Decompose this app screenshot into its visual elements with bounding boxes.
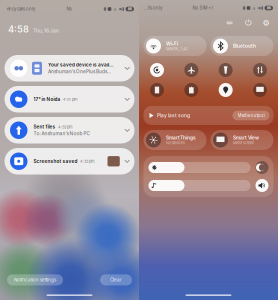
staticText: No devices xyxy=(166,141,185,145)
button[interactable]: Quick setting xyxy=(150,63,164,77)
staticText: 4:33 pm xyxy=(80,159,95,164)
staticText: …lls only xyxy=(144,5,162,11)
staticText: Media output xyxy=(237,113,264,118)
button[interactable]: Smart View xyxy=(210,130,273,150)
staticText: 86 xyxy=(128,7,132,11)
staticText: Anshuman's OnePlus Buds… xyxy=(48,69,111,74)
button[interactable]: Quick setting xyxy=(253,83,267,97)
button[interactable]: Quick setting xyxy=(253,63,267,77)
button[interactable]: Quick setting xyxy=(150,83,164,97)
staticText: ⏻ xyxy=(245,19,251,27)
staticText: Bluetooth xyxy=(233,43,256,49)
staticText: To: Anshuman's Noob PC xyxy=(33,131,89,136)
button[interactable]: Your saved device is avail… xyxy=(4,55,134,81)
button[interactable]: Settings xyxy=(261,17,271,28)
button[interactable]: Quick setting xyxy=(184,83,198,97)
button[interactable]: Toggle xyxy=(255,161,268,174)
staticText: No SIM • I xyxy=(192,5,212,11)
button[interactable]: Notification settings xyxy=(7,274,63,285)
staticText: 86 xyxy=(267,6,271,10)
button[interactable]: Power xyxy=(243,17,253,28)
staticText: SmartThings xyxy=(166,135,196,141)
staticText: Thu, 16 Jan xyxy=(33,28,59,34)
staticText: 4:58 xyxy=(8,23,29,35)
button[interactable]: Bluetooth xyxy=(210,36,273,56)
button[interactable]: 17° in Noida xyxy=(4,86,134,112)
button[interactable]: Quick setting xyxy=(184,63,198,77)
staticText: ⚙ xyxy=(262,18,269,28)
staticText: Realme_7_4G xyxy=(166,47,188,51)
staticText: Screenshot saved xyxy=(33,158,77,164)
staticText: Play last song xyxy=(157,113,190,118)
button[interactable]: SmartThings xyxy=(143,130,206,150)
button[interactable]: Wi-Fi xyxy=(143,36,206,56)
button[interactable]: Quick setting xyxy=(219,63,233,77)
staticText: Smart View xyxy=(233,135,259,141)
staticText: Clear xyxy=(110,277,122,283)
button[interactable]: Toggle xyxy=(255,179,268,192)
staticText: Notification settings xyxy=(14,277,56,283)
button[interactable]: Clear xyxy=(100,274,132,285)
staticText: Mirror screen xyxy=(233,141,254,145)
staticText: 4:51 pm xyxy=(63,97,78,102)
staticText: Wi-Fi xyxy=(166,41,178,47)
button[interactable]: Edit xyxy=(225,17,235,28)
staticText: Sent files xyxy=(33,124,55,130)
staticText: Your saved device is avail… xyxy=(48,62,113,68)
staticText: ✏ xyxy=(226,18,233,28)
button[interactable]: Play last song xyxy=(143,106,273,125)
button[interactable]: Sent files xyxy=(4,117,134,143)
staticText: 4:33 pm xyxy=(58,124,73,129)
staticText: ency calls only xyxy=(7,6,35,12)
button[interactable]: Quick setting xyxy=(219,83,233,97)
staticText: 17° in Noida xyxy=(33,96,60,102)
staticText: No xyxy=(66,6,72,12)
button[interactable]: Screenshot saved xyxy=(4,148,134,174)
